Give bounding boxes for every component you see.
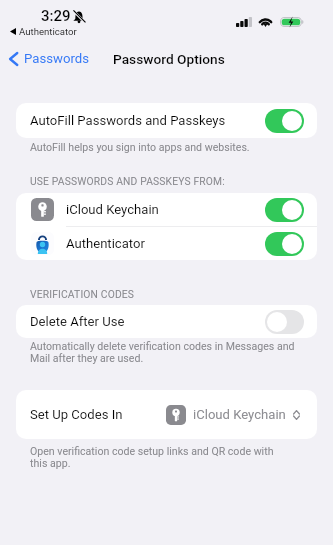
staticText: AutoFill helps you sign into apps and we… bbox=[30, 141, 250, 153]
staticText: iCloud Keychain bbox=[193, 407, 286, 422]
staticText: Delete After Use bbox=[30, 314, 125, 329]
staticText: 3:29 bbox=[41, 7, 71, 25]
button[interactable]: Delete After Use bbox=[16, 305, 317, 338]
button[interactable]: Passwords bbox=[0, 51, 96, 66]
button[interactable]: Set Up Codes In bbox=[16, 390, 317, 439]
staticText: Automatically delete verification codes … bbox=[30, 340, 295, 365]
staticText: Password Options bbox=[113, 51, 225, 67]
button[interactable]: AutoFill Passwords and Passkeys bbox=[16, 103, 317, 138]
button[interactable]: iCloud Keychain bbox=[16, 193, 317, 226]
staticText: USE PASSWORDS AND PASSKEYS FROM: bbox=[30, 175, 225, 187]
staticText: Authenticator bbox=[19, 26, 77, 37]
staticText: iCloud Keychain bbox=[66, 202, 159, 217]
staticText: Authenticator bbox=[66, 236, 145, 251]
button[interactable]: Authenticator bbox=[16, 227, 317, 260]
staticText: VERIFICATION CODES bbox=[30, 288, 135, 300]
button[interactable]: AutoFill Passwords and Passkeys toggle bbox=[265, 109, 304, 133]
button[interactable]: Authenticator toggle bbox=[265, 232, 304, 256]
staticText: Set Up Codes In bbox=[30, 407, 123, 422]
staticText: AutoFill Passwords and Passkeys bbox=[30, 113, 226, 128]
button[interactable]: iCloud Keychain toggle bbox=[265, 198, 304, 222]
button[interactable]: Delete After Use toggle bbox=[265, 310, 304, 334]
staticText: Passwords bbox=[24, 51, 90, 66]
staticText: Open verification code setup links and Q… bbox=[30, 445, 274, 470]
